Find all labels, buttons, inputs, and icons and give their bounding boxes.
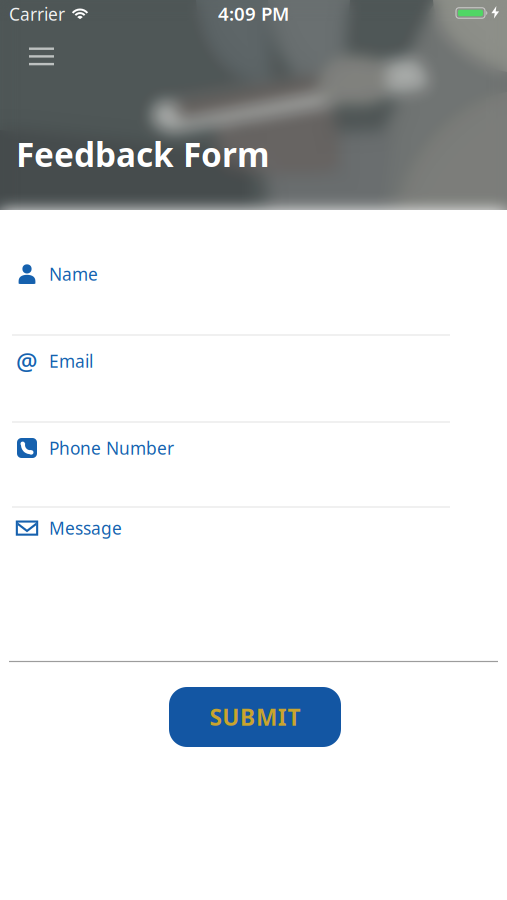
staticText: SUBMIT [209, 702, 300, 732]
button[interactable]: Message [0, 499, 507, 557]
staticText: Email [49, 349, 93, 372]
button[interactable]: Phone Number [0, 419, 507, 477]
staticText: @ [16, 345, 38, 377]
staticText: Phone Number [49, 436, 174, 459]
button[interactable]: SUBMIT [169, 687, 341, 747]
staticText: Feedback Form [16, 132, 270, 176]
staticText: Message [49, 516, 122, 539]
button[interactable]: @ [0, 332, 507, 390]
staticText: Carrier [9, 2, 65, 25]
staticText: Name [49, 262, 98, 285]
button[interactable]: Name [0, 245, 507, 303]
staticText: 4:09 PM [218, 1, 289, 26]
button[interactable]: Menu [19, 36, 63, 76]
